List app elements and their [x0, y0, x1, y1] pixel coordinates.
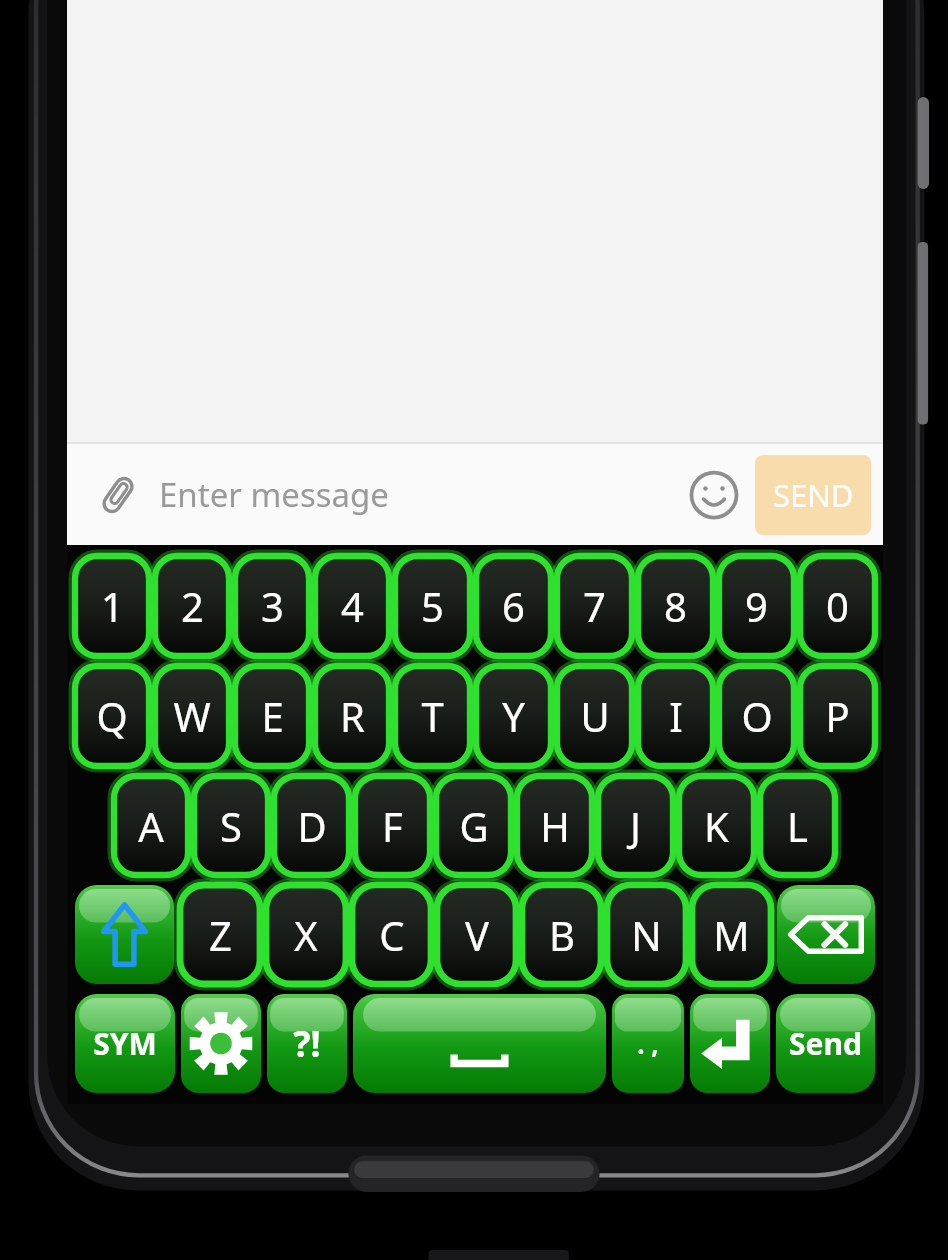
- button[interactable]: 4: [315, 556, 389, 656]
- staticText: E: [261, 689, 284, 743]
- button[interactable]: Attach: [89, 466, 147, 524]
- staticText: V: [465, 908, 489, 962]
- button[interactable]: M: [692, 885, 771, 984]
- button[interactable]: 7: [557, 556, 632, 656]
- staticText: 2: [181, 579, 204, 633]
- staticText: S: [220, 799, 242, 853]
- staticText: B: [549, 908, 575, 962]
- button[interactable]: J: [598, 776, 673, 875]
- staticText: J: [630, 799, 641, 853]
- button[interactable]: 8: [638, 556, 713, 656]
- button[interactable]: Settings: [181, 994, 261, 1093]
- button[interactable]: K: [679, 776, 754, 875]
- button[interactable]: Enter: [690, 994, 770, 1093]
- staticText: Y: [502, 689, 525, 743]
- button[interactable]: Z: [180, 885, 260, 984]
- button[interactable]: O: [719, 666, 794, 766]
- staticText: K: [704, 799, 729, 853]
- staticText: 1: [101, 579, 124, 633]
- staticText: A: [138, 799, 164, 853]
- button[interactable]: X: [266, 885, 346, 984]
- staticText: 8: [664, 579, 687, 633]
- button[interactable]: Space: [353, 994, 606, 1093]
- button[interactable]: I: [638, 666, 713, 766]
- button[interactable]: . ,: [612, 994, 684, 1093]
- staticText: SYM: [93, 1023, 157, 1064]
- staticText: 7: [583, 579, 606, 633]
- staticText: G: [459, 799, 489, 853]
- staticText: R: [340, 689, 365, 743]
- staticText: 5: [421, 579, 444, 633]
- staticText: 3: [261, 579, 284, 633]
- button[interactable]: Send: [776, 994, 875, 1093]
- button[interactable]: P: [800, 666, 875, 766]
- button[interactable]: Y: [476, 666, 551, 766]
- staticText: W: [173, 689, 211, 743]
- staticText: Z: [209, 908, 232, 962]
- button[interactable]: L: [760, 776, 835, 875]
- button[interactable]: Q: [75, 666, 149, 766]
- staticText: F: [382, 799, 403, 853]
- button[interactable]: 6: [476, 556, 551, 656]
- button[interactable]: R: [315, 666, 389, 766]
- staticText: U: [580, 689, 610, 743]
- button[interactable]: U: [557, 666, 632, 766]
- button[interactable]: SYM: [75, 994, 175, 1093]
- button[interactable]: 3: [235, 556, 309, 656]
- button[interactable]: F: [355, 776, 430, 875]
- staticText: Send: [789, 1023, 862, 1064]
- button[interactable]: A: [114, 776, 188, 875]
- button[interactable]: 0: [800, 556, 875, 656]
- staticText: P: [825, 689, 850, 743]
- button[interactable]: 1: [75, 556, 149, 656]
- button[interactable]: E: [235, 666, 309, 766]
- button[interactable]: Shift: [75, 885, 174, 984]
- staticText: M: [713, 908, 750, 962]
- button[interactable]: Emoji: [681, 462, 747, 528]
- staticText: ?!: [293, 1019, 321, 1068]
- staticText: 6: [502, 579, 525, 633]
- button[interactable]: B: [522, 885, 601, 984]
- staticText: D: [297, 799, 327, 853]
- button[interactable]: 5: [395, 556, 470, 656]
- button[interactable]: Enter message: [159, 472, 681, 517]
- staticText: L: [787, 799, 808, 853]
- staticText: 4: [341, 579, 364, 633]
- staticText: T: [421, 689, 444, 743]
- button[interactable]: Backspace: [777, 885, 875, 984]
- button[interactable]: W: [155, 666, 229, 766]
- button[interactable]: D: [274, 776, 349, 875]
- staticText: O: [741, 689, 773, 743]
- staticText: 9: [745, 579, 768, 633]
- button[interactable]: N: [607, 885, 686, 984]
- staticText: 0: [826, 579, 849, 633]
- staticText: . ,: [637, 1026, 659, 1061]
- button[interactable]: 2: [155, 556, 229, 656]
- button[interactable]: C: [352, 885, 431, 984]
- button[interactable]: V: [437, 885, 516, 984]
- staticText: C: [379, 908, 405, 962]
- staticText: I: [669, 689, 683, 743]
- staticText: N: [631, 908, 662, 962]
- button[interactable]: 9: [719, 556, 794, 656]
- staticText: Q: [96, 689, 128, 743]
- button[interactable]: ?!: [267, 994, 347, 1093]
- staticText: H: [540, 799, 570, 853]
- button[interactable]: H: [517, 776, 592, 875]
- button[interactable]: SEND: [755, 455, 871, 535]
- staticText: X: [294, 908, 318, 962]
- button[interactable]: T: [395, 666, 470, 766]
- staticText: SEND: [773, 474, 854, 516]
- button[interactable]: G: [436, 776, 511, 875]
- button[interactable]: S: [194, 776, 268, 875]
